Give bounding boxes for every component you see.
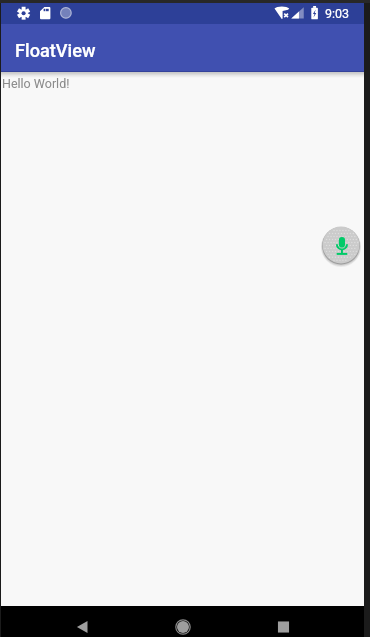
button[interactable]: Back	[69, 614, 95, 637]
button[interactable]: Recents	[271, 614, 297, 637]
staticText: 9:03	[325, 6, 350, 21]
staticText: Hello World!	[2, 76, 70, 91]
button[interactable]: FloatView	[1, 24, 364, 72]
button[interactable]: Home	[170, 614, 196, 637]
button[interactable]: Microphone	[320, 224, 362, 266]
staticText: FloatView	[15, 40, 96, 61]
